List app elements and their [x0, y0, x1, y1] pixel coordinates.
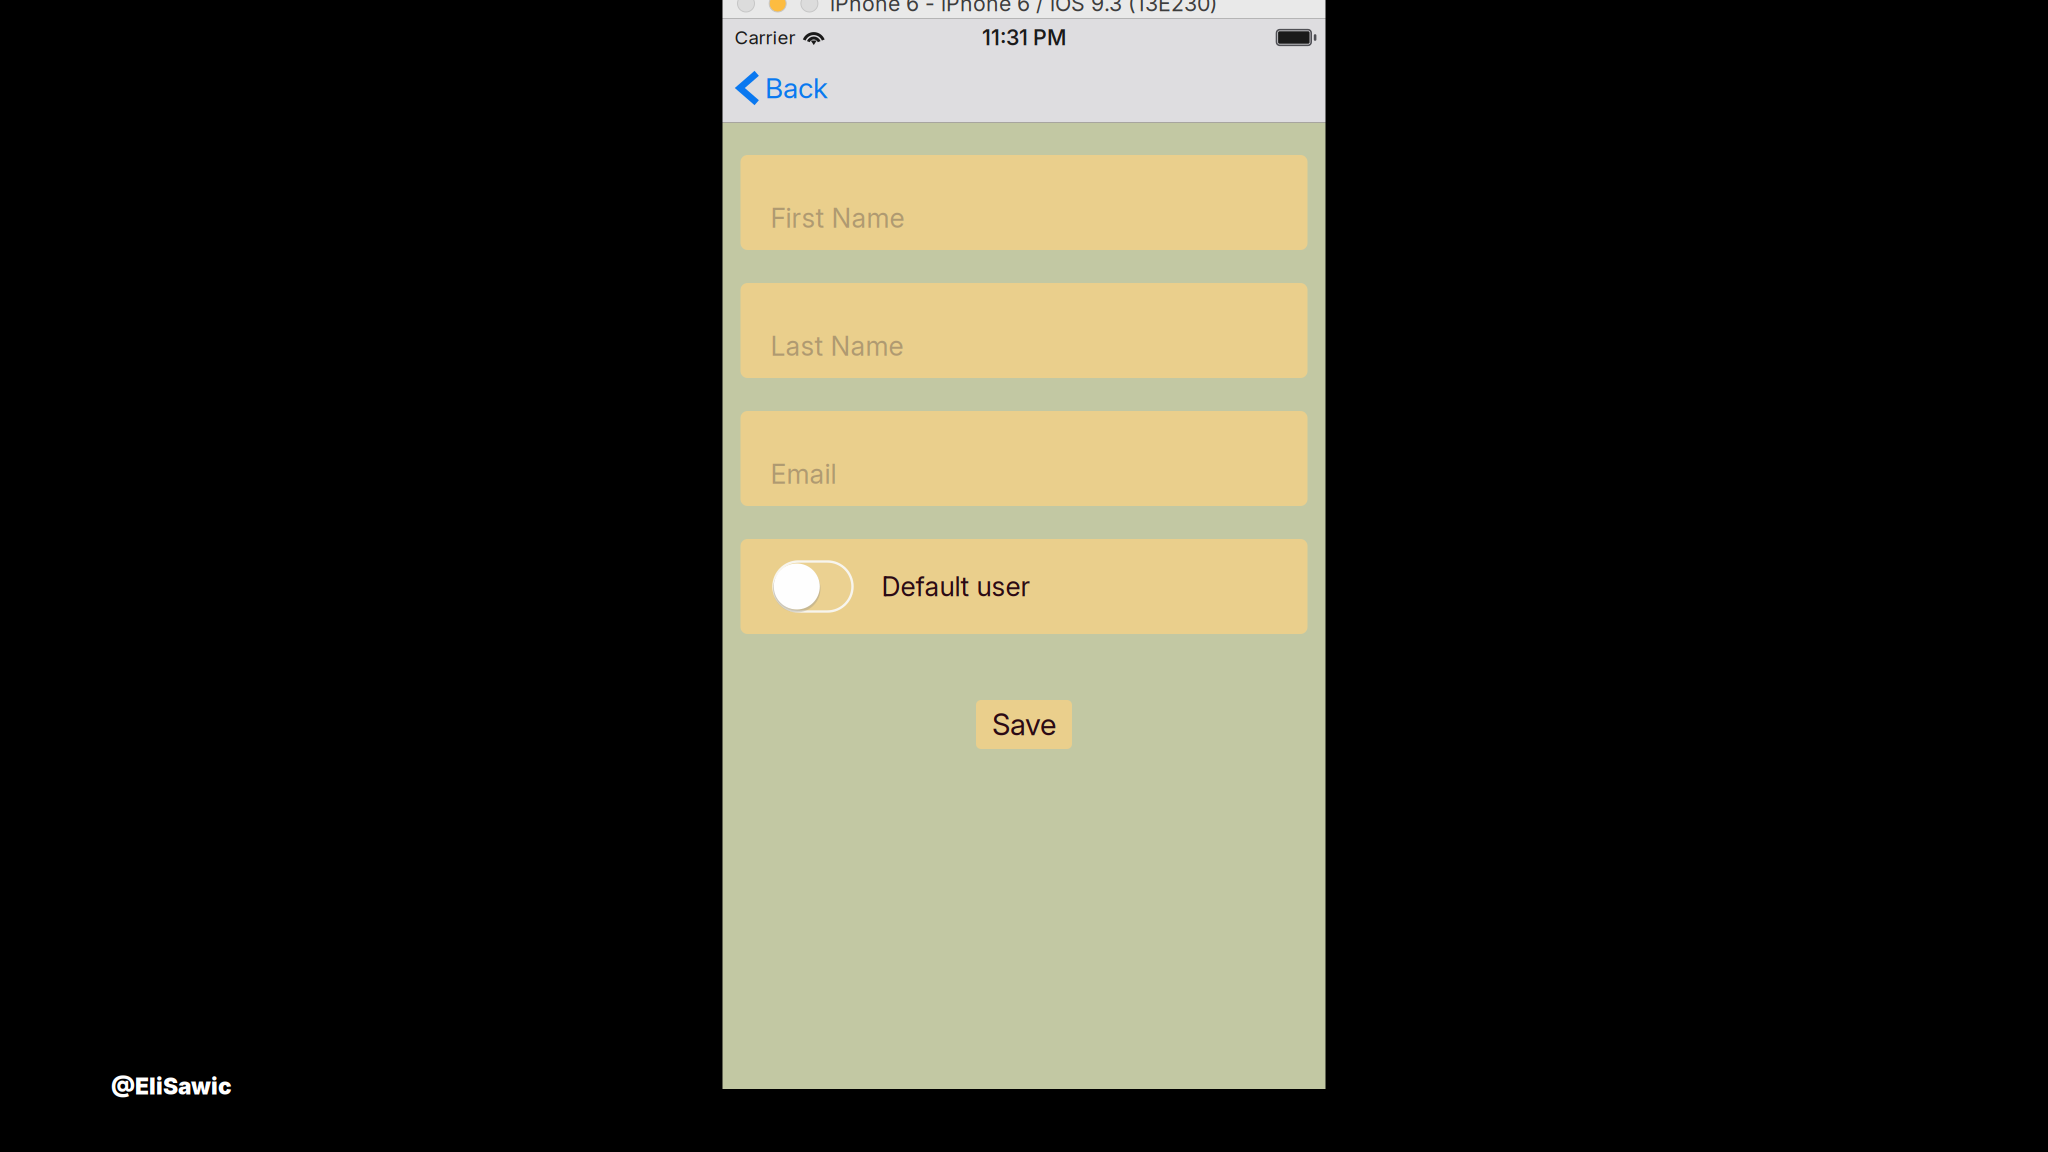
staticText: First Name [770, 202, 904, 234]
button[interactable]: Last Name [740, 283, 1307, 378]
staticText: Save [992, 707, 1056, 742]
staticText: Carrier [734, 26, 795, 49]
staticText: Last Name [770, 330, 903, 362]
staticText: iPhone 6 - iPhone 6 / iOS 9.3 (13E230) [830, 0, 1218, 16]
staticText: @EliSawic [111, 1073, 232, 1100]
staticText: Default user [881, 570, 1030, 603]
staticText: 11:31 PM [982, 25, 1066, 50]
staticText: Email [770, 458, 836, 490]
button[interactable]: Minimise [769, 0, 786, 12]
button[interactable]: Email [740, 411, 1307, 506]
button[interactable]: Save [976, 700, 1072, 749]
button[interactable]: Zoom [801, 0, 818, 12]
button[interactable]: First Name [740, 155, 1307, 250]
button[interactable]: Default user [740, 539, 1307, 634]
button[interactable]: Back [722, 56, 840, 123]
staticText: Back [765, 71, 828, 105]
button[interactable]: Close [737, 0, 754, 12]
